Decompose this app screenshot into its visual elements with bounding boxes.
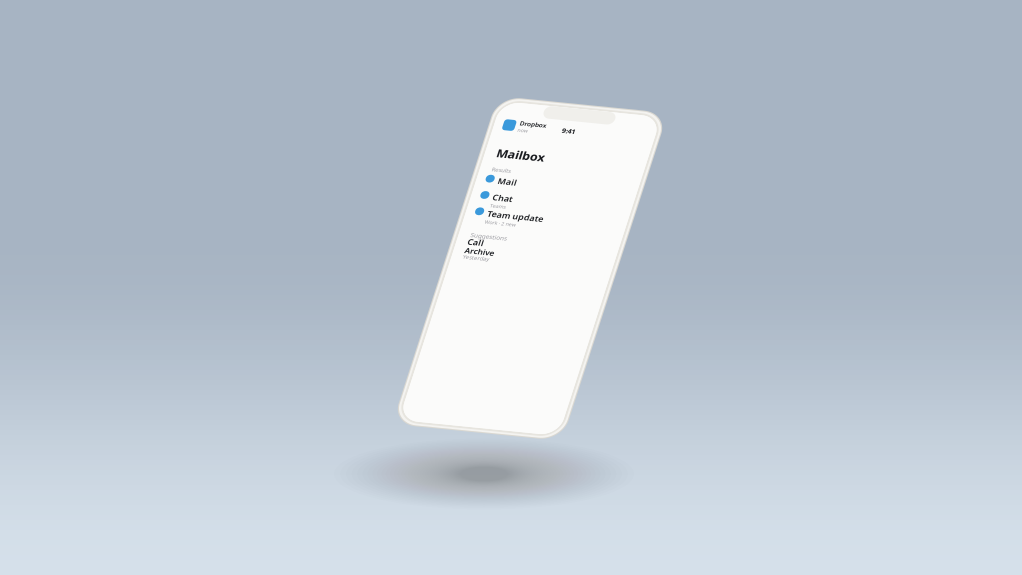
staticText: Mailbox <box>536 219 646 256</box>
staticText: Team update <box>559 378 688 405</box>
button[interactable]: Team update <box>530 378 856 420</box>
button[interactable]: Mail <box>530 294 856 321</box>
staticText: Work · 2 new <box>559 405 630 420</box>
button[interactable]: Archive <box>535 476 603 501</box>
staticText: Archive <box>535 476 603 501</box>
staticText: Yesterday <box>535 496 596 514</box>
button[interactable]: Call <box>535 453 572 480</box>
staticText: Teams <box>559 363 596 378</box>
staticText: Mail <box>559 294 602 321</box>
staticText: Chat <box>559 336 605 363</box>
staticText: Suggestions <box>537 439 621 458</box>
staticText: Call <box>535 453 572 480</box>
button[interactable]: Chat <box>530 336 856 378</box>
